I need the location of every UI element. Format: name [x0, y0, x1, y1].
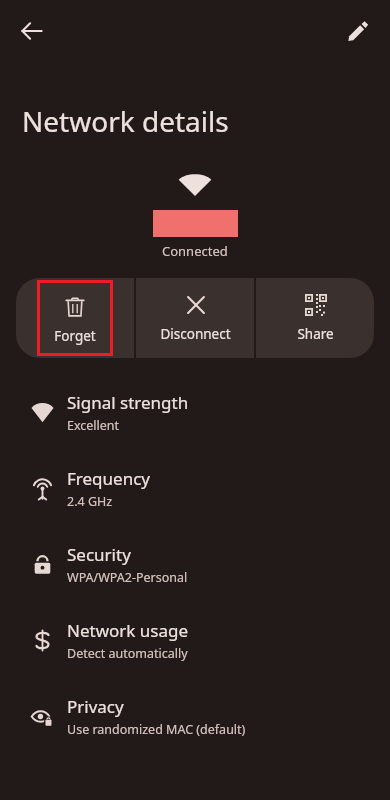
- staticText: Share: [297, 325, 334, 343]
- button[interactable]: Signal strength: [0, 374, 390, 450]
- button[interactable]: Back: [10, 9, 54, 53]
- staticText: Disconnect: [160, 325, 231, 343]
- button[interactable]: Forget: [16, 278, 134, 358]
- button[interactable]: Frequency: [0, 450, 390, 526]
- staticText: Excellent: [67, 417, 120, 434]
- staticText: Frequency: [67, 467, 150, 490]
- staticText: Use randomized MAC (default): [67, 721, 246, 738]
- button[interactable]: Disconnect: [136, 278, 254, 358]
- staticText: Connected: [162, 242, 228, 260]
- button[interactable]: Edit: [336, 9, 380, 53]
- button[interactable]: Network usage: [0, 602, 390, 678]
- staticText: Forget: [54, 327, 96, 345]
- staticText: Network details: [22, 102, 229, 140]
- staticText: Security: [67, 543, 131, 566]
- button[interactable]: Share: [256, 278, 374, 358]
- button[interactable]: Privacy: [0, 678, 390, 754]
- staticText: Detect automatically: [67, 645, 188, 662]
- staticText: Network usage: [67, 619, 189, 642]
- staticText: 2.4 GHz: [67, 493, 113, 510]
- staticText: Signal strength: [67, 391, 189, 414]
- button[interactable]: Security: [0, 526, 390, 602]
- staticText: WPA/WPA2-Personal: [67, 569, 188, 586]
- staticText: Privacy: [67, 695, 124, 718]
